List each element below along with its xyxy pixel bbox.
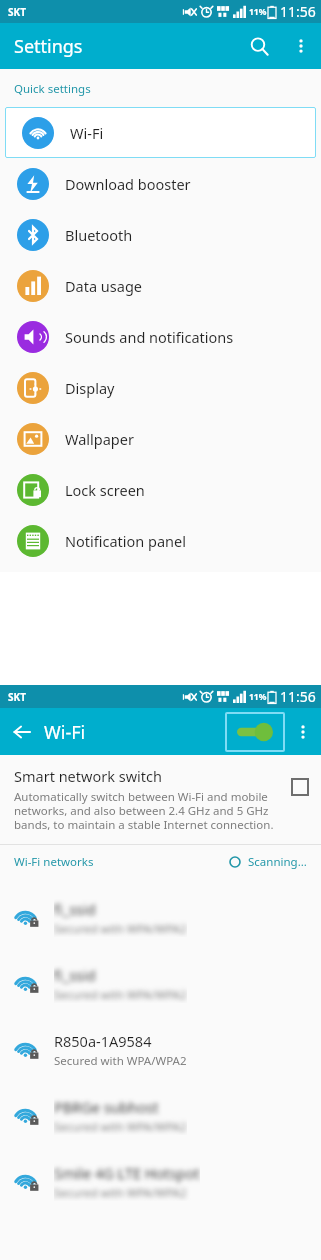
button[interactable]: Display <box>0 362 321 413</box>
button[interactable]: fi_ssid <box>14 885 321 951</box>
staticText: Secured with WPA/WPA2 <box>54 987 187 1003</box>
button[interactable]: Search <box>237 24 281 68</box>
staticText: Secured with WPA/WPA2 <box>54 1119 187 1135</box>
button[interactable]: Wallpaper <box>0 413 321 464</box>
button[interactable]: More options <box>281 26 321 66</box>
staticText: 11% <box>249 6 267 18</box>
staticText: Scanning... <box>248 854 307 870</box>
button[interactable]: fi_ssid <box>14 951 321 1017</box>
staticText: SKT <box>8 5 26 19</box>
button[interactable]: Notification panel <box>0 515 321 566</box>
button[interactable]: Sounds and notifications <box>0 311 321 362</box>
staticText: fi_ssid <box>54 965 96 985</box>
staticText: Bluetooth <box>65 225 133 245</box>
staticText: Smile 4G LTE Hotspot <box>54 1163 200 1183</box>
button[interactable]: Wi-Fi <box>5 107 316 158</box>
staticText: 11:56 <box>280 687 316 706</box>
staticText: 11:56 <box>280 2 316 21</box>
staticText: Display <box>65 378 115 398</box>
button[interactable]: More options <box>285 714 321 750</box>
staticText: Quick settings <box>14 81 91 97</box>
staticText: Secured with WPA/WPA2 <box>54 1185 187 1201</box>
button[interactable]: Bluetooth <box>0 209 321 260</box>
button[interactable]: Back <box>0 710 44 754</box>
staticText: Sounds and notifications <box>65 327 234 347</box>
button[interactable]: Smart network switch checkbox <box>291 778 309 796</box>
staticText: Wi-Fi <box>70 123 104 143</box>
staticText: Wi-Fi networks <box>14 854 94 870</box>
button[interactable]: R850a-1A9584 <box>14 1017 321 1083</box>
staticText: Data usage <box>65 276 142 296</box>
staticText: Lock screen <box>65 480 145 500</box>
staticText: Smart network switch <box>14 766 162 786</box>
staticText: Secured with WPA/WPA2 <box>54 921 187 937</box>
staticText: SKT <box>8 690 26 704</box>
button[interactable]: Data usage <box>0 260 321 311</box>
staticText: Download booster <box>65 174 191 194</box>
staticText: Wi-Fi <box>44 720 86 745</box>
staticText: 11% <box>249 691 267 703</box>
staticText: R850a-1A9584 <box>54 1031 152 1051</box>
staticText: Settings <box>14 34 83 59</box>
button[interactable]: Lock screen <box>0 464 321 515</box>
staticText: Wallpaper <box>65 429 134 449</box>
button[interactable]: Download booster <box>0 158 321 209</box>
button[interactable]: Smart network switch <box>14 766 309 832</box>
button[interactable]: Wi-Fi on <box>225 712 285 752</box>
staticText: fi_ssid <box>54 899 96 919</box>
button[interactable]: PBRGe subhost <box>14 1083 321 1149</box>
staticText: PBRGe subhost <box>54 1097 159 1117</box>
staticText: Automatically switch between Wi-Fi and m… <box>14 789 281 832</box>
staticText: Secured with WPA/WPA2 <box>54 1053 187 1069</box>
button[interactable]: Smile 4G LTE Hotspot <box>14 1149 321 1215</box>
staticText: Notification panel <box>65 531 187 551</box>
